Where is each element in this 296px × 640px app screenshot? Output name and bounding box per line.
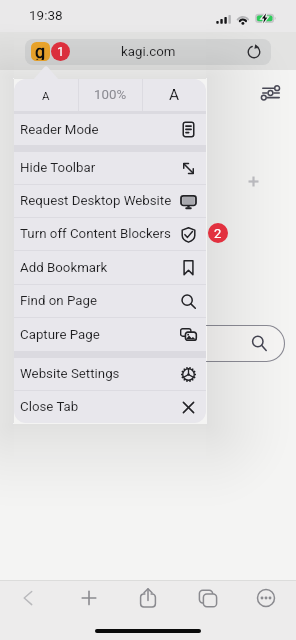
button[interactable]: 100% [79,79,142,111]
staticText: Hide Toolbar [20,160,180,176]
staticText: Request Desktop Website [20,193,180,209]
staticText: 2 [214,226,222,241]
staticText: Reader Mode [20,122,180,138]
staticText: g [35,42,46,60]
button[interactable]: Request Desktop Website [14,185,206,217]
staticText: A [169,86,180,104]
button[interactable]: Hide Toolbar [14,152,206,184]
button[interactable]: Back [8,582,48,614]
button[interactable]: 2 [208,223,228,243]
staticText: Close Tab [20,399,180,415]
button[interactable]: Tabs [187,582,227,614]
button[interactable]: Share [128,582,168,614]
button[interactable]: Settings [257,82,285,106]
button[interactable]: Website Settings [14,358,206,390]
button[interactable]: Capture Page [14,318,206,351]
button[interactable]: Site settings [25,39,271,65]
button[interactable]: More [246,582,286,614]
staticText: kagi.com [121,44,176,60]
staticText: 1 [57,44,65,59]
staticText: 19:38 [29,7,63,23]
button[interactable]: Reader Mode [14,114,206,145]
button[interactable]: Site settings [31,42,50,61]
button[interactable]: Increase text size [143,79,206,111]
button[interactable]: Add Bookmark [14,251,206,284]
staticText: Website Settings [20,366,180,382]
staticText: Turn off Content Blockers [20,226,180,242]
button[interactable]: Find on Page [14,285,206,317]
staticText: Capture Page [20,327,180,343]
button[interactable]: Reload [247,45,261,59]
staticText: 100% [94,87,127,103]
button[interactable]: Close Tab [14,391,206,423]
button[interactable]: Decrease text size [14,79,78,111]
staticText: A [42,89,50,102]
button[interactable]: Turn off Content Blockers [14,218,206,250]
button[interactable]: New Tab [69,582,109,614]
staticText: Add Bookmark [20,260,180,276]
staticText: Find on Page [20,293,180,309]
button[interactable] [16,325,285,362]
